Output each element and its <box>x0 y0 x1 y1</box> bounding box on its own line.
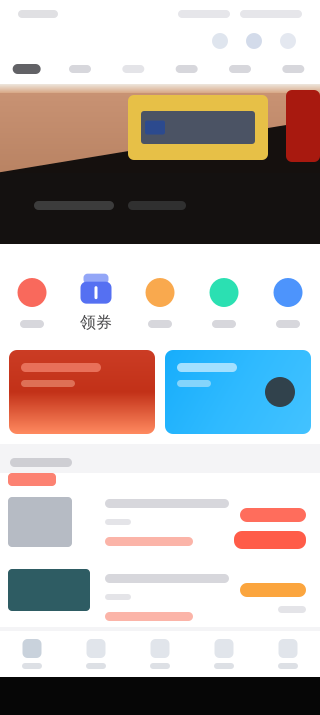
button[interactable]: Category 3 <box>107 65 160 73</box>
button[interactable]: Product <box>0 473 320 561</box>
button[interactable]: Category 4 <box>160 65 213 73</box>
button[interactable]: Categories <box>64 639 128 669</box>
button[interactable]: Services <box>257 278 319 328</box>
button[interactable]: Category 2 <box>53 65 107 73</box>
button[interactable]: More <box>280 33 296 49</box>
staticText: 领券 <box>80 313 112 332</box>
button[interactable]: Recharge <box>193 278 255 328</box>
button[interactable]: Category 5 <box>213 65 267 73</box>
button[interactable]: 领券 <box>65 278 127 328</box>
button[interactable]: Promotion <box>9 350 155 434</box>
button[interactable]: Promotion <box>165 350 311 434</box>
button[interactable]: Category 6 <box>267 65 320 73</box>
button[interactable]: Cart <box>192 639 256 669</box>
button[interactable]: Discover <box>128 639 192 669</box>
button[interactable]: Scan <box>212 33 228 49</box>
button[interactable]: Product <box>0 561 320 627</box>
button[interactable]: Messages <box>246 33 262 49</box>
button[interactable]: Recommended <box>0 64 53 74</box>
button[interactable]: Sign in <box>1 278 63 328</box>
button[interactable]: Mine <box>256 639 320 669</box>
button[interactable]: Home <box>0 639 64 669</box>
button[interactable]: Orders <box>129 278 191 328</box>
